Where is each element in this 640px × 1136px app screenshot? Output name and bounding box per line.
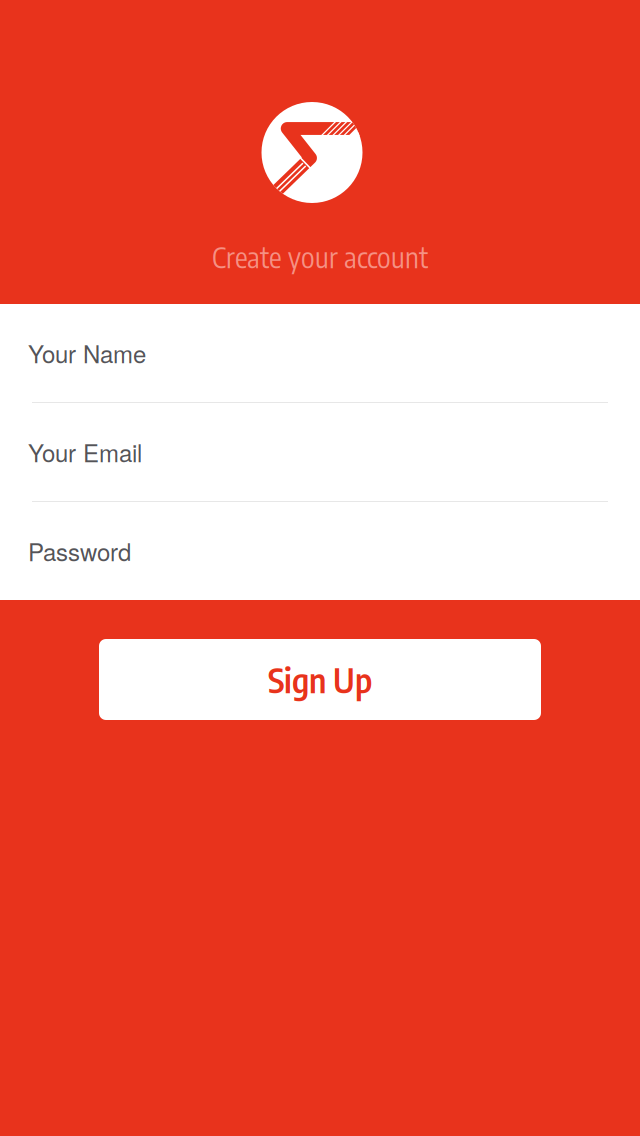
staticText: Your Name — [28, 336, 146, 370]
staticText: Your Email — [28, 435, 142, 469]
staticText: Sign Up — [268, 658, 372, 701]
staticText: Password — [28, 534, 131, 568]
staticText: Create your account — [212, 239, 428, 274]
button[interactable]: Sign Up — [99, 639, 541, 720]
